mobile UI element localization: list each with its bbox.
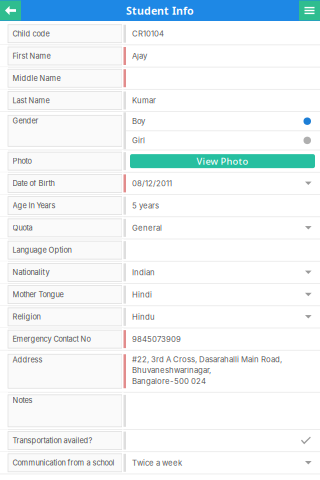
button[interactable]: Girl [126,131,320,150]
staticText: Student Info [126,3,194,18]
staticText: 08/12/2011 [132,179,172,188]
staticText: Nationality [12,268,49,277]
button[interactable]: Menu [299,0,320,20]
staticText: Language Option [12,246,71,255]
button[interactable]: Boy [126,112,320,130]
staticText: Mother Tongue [12,290,63,299]
staticText: General [132,223,162,233]
staticText: Girl [132,136,145,145]
staticText: Middle Name [12,74,60,83]
staticText: Last Name [12,96,49,105]
staticText: Indian [132,268,155,277]
staticText: Ajay [132,51,147,61]
staticText: Age In Years [12,201,55,210]
staticText: Communication from a school [12,458,114,467]
staticText: View Photo [196,155,248,167]
staticText: Address [12,355,42,364]
staticText: Date of Birth [12,179,54,188]
staticText: First Name [12,51,50,60]
staticText: Photo [12,157,31,166]
button[interactable]: View Photo [130,154,315,168]
staticText: Child code [12,29,49,38]
staticText: Gender [12,116,38,125]
staticText: Bangalore-500 024 [132,376,206,386]
staticText: Boy [132,116,145,126]
staticText: Kumar [132,96,156,105]
button[interactable]: Back [0,0,21,20]
staticText: 5 years [132,201,159,210]
staticText: Twice a week [132,458,182,467]
staticText: #22, 3rd A Cross, Dasarahalli Main Road, [132,355,282,364]
staticText: Quota [12,223,32,232]
staticText: Emergency Contact No [12,335,90,344]
staticText: Hindi [132,290,152,299]
staticText: Transportation availed? [12,436,92,445]
staticText: Bhuvaneshwarinagar, [132,366,211,375]
staticText: Notes [12,396,32,405]
staticText: CR10104 [132,29,164,38]
staticText: Religion [12,312,40,321]
staticText: 9845073909 [132,334,181,344]
staticText: Hindu [132,312,155,322]
